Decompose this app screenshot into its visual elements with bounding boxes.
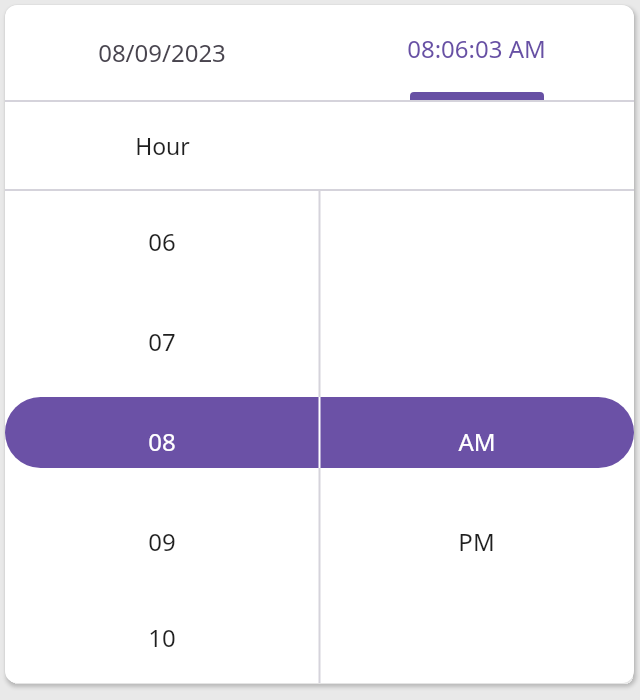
staticText: 08 bbox=[148, 425, 176, 458]
staticText: AM bbox=[458, 425, 496, 458]
staticText: PM bbox=[458, 525, 495, 558]
button[interactable]: 06 bbox=[5, 191, 319, 291]
button[interactable]: 08:06:03 AM bbox=[319, 5, 634, 100]
button[interactable]: Hour bbox=[5, 102, 319, 189]
button[interactable]: 07 bbox=[5, 291, 319, 391]
button[interactable]: 08 bbox=[5, 391, 319, 491]
staticText: 10 bbox=[148, 621, 176, 654]
button[interactable]: 09 bbox=[5, 491, 319, 591]
staticText: 09 bbox=[148, 525, 176, 558]
staticText: 08:06:03 AM bbox=[407, 32, 546, 65]
button[interactable]: 10 bbox=[5, 591, 319, 683]
button[interactable]: AM bbox=[319, 391, 634, 491]
staticText: 08/09/2023 bbox=[98, 36, 226, 69]
button[interactable]: PM bbox=[319, 491, 634, 591]
staticText: 06 bbox=[148, 225, 176, 258]
button[interactable]: 08/09/2023 bbox=[5, 5, 319, 100]
staticText: Hour bbox=[135, 130, 190, 161]
staticText: 07 bbox=[148, 325, 176, 358]
